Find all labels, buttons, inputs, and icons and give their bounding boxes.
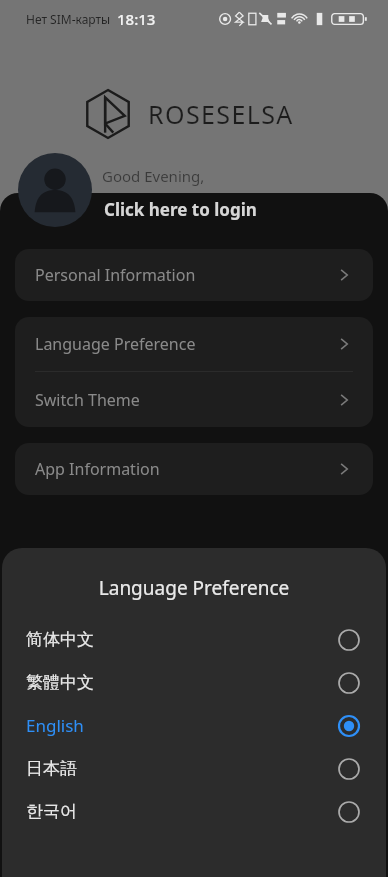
button[interactable]: English [2,704,386,747]
button[interactable]: Click here to login [102,196,259,223]
button[interactable]: 简体中文 [2,618,386,661]
staticText: Personal Information [35,264,196,286]
staticText: Language Preference [2,575,386,601]
staticText: App Information [35,458,160,480]
staticText: 日本語 [26,758,77,779]
staticText: Нет SIM-карты [26,11,111,27]
button[interactable]: Profile avatar [18,153,92,227]
staticText: Language Preference [35,333,196,355]
button[interactable]: 繁體中文 [2,661,386,704]
staticText: 한국어 [26,801,77,822]
button[interactable]: App Information [15,443,373,495]
button[interactable]: 한국어 [2,790,386,833]
staticText: 繁體中文 [26,672,94,693]
staticText: Good Evening, [102,166,205,186]
button[interactable]: 日本語 [2,747,386,790]
staticText: ROSESELSA [148,97,294,131]
staticText: English [26,714,84,737]
staticText: 18:13 [117,9,156,29]
button[interactable]: Personal Information [15,249,373,301]
button[interactable]: Switch Theme [15,372,373,427]
button[interactable]: Language Preference [15,317,373,371]
staticText: Switch Theme [35,389,140,411]
staticText: 简体中文 [26,629,94,650]
